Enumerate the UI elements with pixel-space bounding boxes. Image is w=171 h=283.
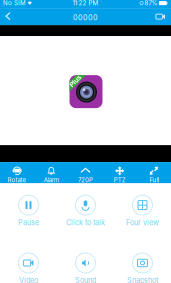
staticText: Full — [149, 176, 158, 184]
button[interactable]: Rotate — [0, 162, 34, 183]
staticText: Plus — [68, 77, 82, 85]
button[interactable]: Click to talk — [57, 195, 114, 227]
staticText: 11:22 PM — [72, 0, 98, 7]
button[interactable]: Four view — [114, 195, 171, 227]
button[interactable]: Snapshot — [114, 253, 171, 283]
button[interactable]: Full — [137, 162, 171, 183]
button[interactable]: Video — [150, 8, 171, 25]
staticText: 720P — [78, 176, 93, 184]
staticText: Alarm — [44, 176, 59, 184]
button[interactable]: Back — [0, 8, 17, 25]
staticText: Snapshot — [127, 276, 158, 283]
staticText: Click to talk — [66, 218, 105, 227]
button[interactable]: PTZ — [103, 162, 137, 183]
button[interactable]: Sound — [57, 253, 114, 283]
button[interactable]: Video — [0, 253, 57, 283]
button[interactable]: Pause — [0, 195, 57, 227]
staticText: Video — [19, 276, 38, 283]
staticText: Four view — [126, 218, 159, 227]
staticText: Pause — [18, 218, 39, 227]
button[interactable]: Alarm — [34, 162, 68, 183]
staticText: PTZ — [114, 176, 126, 184]
staticText: Rotate — [8, 176, 27, 184]
button[interactable]: 720P — [68, 162, 103, 183]
staticText: Sound — [75, 276, 96, 283]
staticText: 00000 — [73, 13, 98, 22]
staticText: 87% — [144, 0, 157, 7]
staticText: No SIM — [3, 0, 26, 7]
